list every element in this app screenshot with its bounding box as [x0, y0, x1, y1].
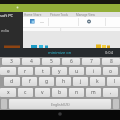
staticText: v [41, 89, 44, 96]
button[interactable]: n [69, 88, 84, 97]
staticText: 3 [10, 58, 13, 65]
staticText: i [93, 68, 95, 75]
staticText: , [110, 89, 112, 96]
button[interactable]: 4 [22, 58, 40, 65]
staticText: n [75, 89, 79, 96]
staticText: j [80, 78, 82, 85]
staticText: t [42, 68, 44, 75]
staticText: English(US) [51, 102, 70, 107]
button[interactable]: 8 [102, 58, 120, 65]
button[interactable]: m [86, 88, 101, 97]
staticText: 6 [70, 58, 73, 65]
staticText: 7 [90, 58, 93, 65]
button[interactable]: g [39, 77, 54, 86]
button[interactable]: j [73, 77, 88, 86]
staticText: e [7, 68, 10, 75]
button[interactable]: t [35, 67, 50, 75]
button[interactable]: 6 [62, 58, 80, 65]
button[interactable]: Remote session toolbar [0, 4, 120, 12]
staticText: l [114, 78, 116, 85]
button[interactable]: Home Share [23, 12, 120, 17]
button[interactable]: , [103, 88, 118, 97]
button[interactable]: f [22, 77, 37, 86]
staticText: soft PC [0, 13, 14, 18]
staticText: k [96, 78, 99, 85]
button[interactable]: x [0, 88, 16, 97]
staticText: m [91, 89, 96, 96]
button[interactable]: i [86, 67, 101, 75]
staticText: y [58, 68, 61, 75]
button[interactable]: b [52, 88, 67, 97]
staticText: Picture Tools [50, 13, 68, 17]
button[interactable]: r [18, 67, 33, 75]
staticText: c [24, 89, 27, 96]
staticText: f [29, 78, 31, 85]
button[interactable]: Space [9, 99, 111, 109]
staticText: edia [1, 28, 9, 33]
staticText: d [10, 78, 14, 85]
staticText: u [75, 68, 79, 75]
button[interactable]: o [103, 67, 118, 75]
button[interactable]: 7 [82, 58, 100, 65]
button[interactable]: 5 [42, 58, 60, 65]
staticText: g [45, 78, 49, 85]
button[interactable]: h [56, 77, 71, 86]
button[interactable]: u [69, 67, 84, 75]
staticText: 0:04 [105, 50, 113, 55]
staticText: x [7, 89, 10, 96]
button[interactable]: l [107, 77, 120, 86]
staticText: o [109, 68, 113, 75]
button[interactable]: 3 [2, 58, 20, 65]
staticText: 4 [30, 58, 33, 65]
button[interactable]: v [35, 88, 50, 97]
staticText: h [62, 78, 66, 85]
staticText: 5 [50, 58, 53, 65]
button[interactable]: c [18, 88, 33, 97]
button[interactable]: e [0, 67, 16, 75]
button[interactable]: y [52, 67, 67, 75]
staticText: r [24, 68, 27, 75]
button[interactable]: k [90, 77, 105, 86]
staticText: 8 [110, 58, 113, 65]
staticText: b [58, 89, 62, 96]
button[interactable]: d [4, 77, 20, 86]
staticText: minimize on [48, 50, 72, 55]
staticText: Manage View [76, 13, 95, 17]
staticText: Home Share [24, 13, 42, 17]
